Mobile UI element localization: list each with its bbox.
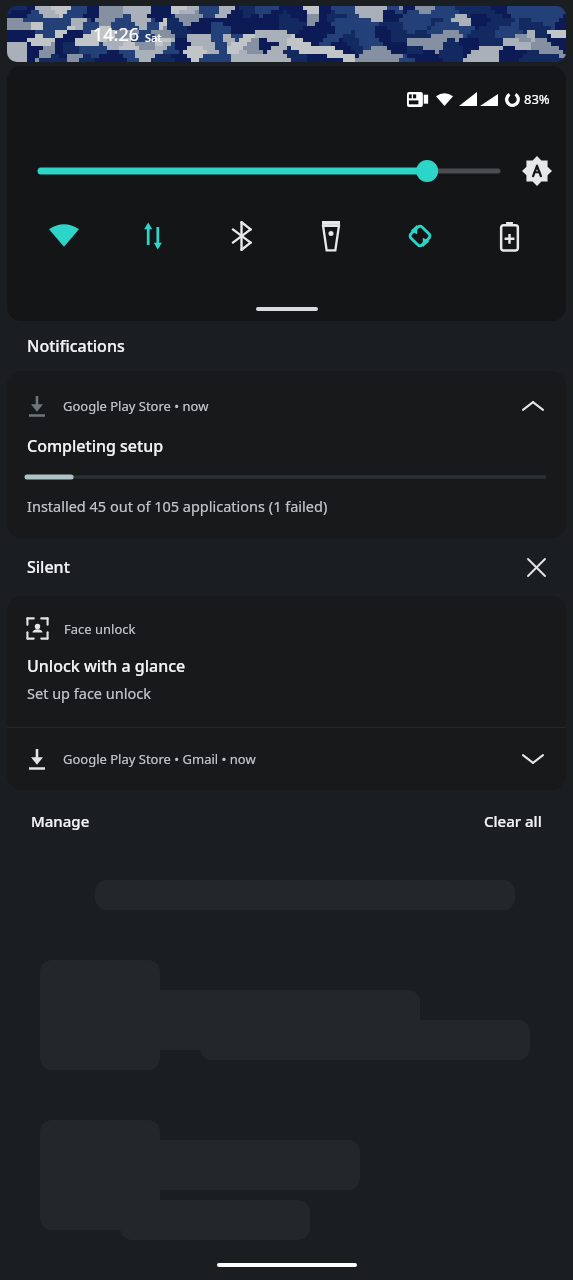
staticText: Sat [145,30,162,45]
button[interactable]: Collapse [520,393,546,419]
staticText: Notifications [27,335,125,357]
button[interactable]: Brightness [33,158,506,184]
staticText: Manage [31,811,90,831]
staticText: Clear all [484,811,542,831]
button[interactable]: Bluetooth [210,204,274,268]
button[interactable]: Flashlight [299,204,363,268]
button[interactable]: 14:26 [7,6,566,62]
staticText: 83% [524,90,550,108]
button[interactable]: Clear silent notifications [521,552,551,582]
button[interactable]: Auto rotate [388,204,452,268]
button[interactable] [256,307,318,311]
staticText: Silent [27,556,70,578]
staticText: Google Play Store • now [63,397,209,415]
button[interactable]: Google Play Store • now [7,371,566,538]
button[interactable]: Face unlock [7,596,566,727]
button[interactable]: Clear all [480,807,546,835]
staticText: Installed 45 out of 105 applications (1 … [27,496,328,516]
button[interactable]: Mobile data [121,204,185,268]
button[interactable]: Manage [27,807,94,835]
staticText: Completing setup [27,435,164,457]
staticText: 14:26 [93,22,140,47]
button[interactable]: Battery saver [477,204,541,268]
staticText: Face unlock [64,620,136,638]
staticText: Unlock with a glance [27,655,186,677]
staticText: Google Play Store • Gmail • now [63,750,256,768]
button[interactable]: Expand [520,746,546,772]
staticText: Set up face unlock [27,683,151,703]
button[interactable]: Wi-Fi [32,204,96,268]
button[interactable]: Auto brightness [520,154,554,188]
button[interactable]: Google Play Store • Gmail • now [7,728,566,790]
